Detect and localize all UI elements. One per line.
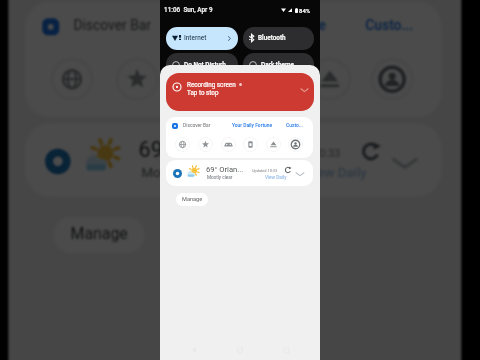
button[interactable]: Favourites (116, 58, 158, 100)
button[interactable]: Favourites (198, 137, 213, 152)
staticText: View Daily (306, 166, 368, 183)
button[interactable]: Refresh (360, 140, 382, 163)
button[interactable]: Custo... (365, 15, 413, 32)
button[interactable]: 69° Orlan... (166, 160, 313, 186)
button[interactable]: View Daily (306, 166, 368, 183)
button[interactable]: Expand weather (294, 168, 306, 180)
staticText: Tap to stop (187, 89, 219, 96)
staticText: Manage (71, 225, 130, 245)
button[interactable]: Expand weather (388, 146, 422, 180)
button[interactable]: Account (288, 137, 303, 152)
button[interactable]: Recording screen (166, 73, 314, 111)
button[interactable]: Refresh (284, 166, 292, 174)
staticText: 69° Orlan... (139, 137, 246, 163)
button[interactable]: Downloads (266, 137, 281, 152)
button[interactable]: Search (175, 137, 190, 152)
button[interactable]: Devices (243, 58, 286, 100)
button[interactable]: Account (371, 58, 413, 100)
staticText: Updated 10:33 (269, 146, 343, 160)
staticText: Internet (184, 34, 207, 42)
button[interactable]: Manage (54, 217, 144, 253)
button[interactable]: Devices (243, 137, 258, 152)
staticText: 69° Orlan... (206, 165, 244, 174)
staticText: Mostly clear (207, 175, 233, 181)
staticText: 84% (299, 7, 311, 14)
button[interactable]: View Daily (265, 175, 287, 181)
staticText: Manage (182, 196, 203, 203)
button[interactable]: 69° Orlan... (25, 123, 442, 197)
staticText: Dark theme (261, 61, 294, 69)
button[interactable]: Expand notification (298, 84, 310, 96)
staticText: Updated 10:33 (252, 168, 278, 173)
button[interactable]: Search (51, 58, 93, 100)
staticText: Recording screen (187, 81, 236, 88)
button[interactable]: Manage (176, 193, 208, 206)
staticText: View Daily (265, 175, 287, 181)
staticText: 11:06 Sun, Apr 9 (164, 6, 213, 14)
staticText: Your Daily Fortune (212, 15, 328, 32)
staticText: Do Not Disturb (184, 61, 226, 69)
staticText: Discover Bar (73, 15, 153, 32)
button[interactable]: Your Daily Fortune (232, 122, 273, 128)
staticText: Custo... (365, 15, 413, 32)
button[interactable]: Do Not Disturb (166, 53, 238, 76)
button[interactable]: Games (221, 137, 236, 152)
button[interactable]: Bluetooth (243, 27, 314, 50)
button[interactable]: Games (181, 58, 224, 100)
staticText: Custo... (286, 122, 303, 128)
button[interactable]: Discover Bar (183, 122, 211, 128)
staticText: Your Daily Fortune (232, 122, 273, 128)
staticText: Mostly clear (141, 166, 215, 183)
button[interactable]: Dark theme (243, 53, 314, 76)
button[interactable]: Downloads (309, 58, 351, 100)
button[interactable]: Discover Bar (73, 15, 153, 32)
staticText: Discover Bar (183, 122, 211, 128)
button[interactable]: Your Daily Fortune (212, 15, 328, 32)
button[interactable]: Custo... (286, 122, 303, 128)
staticText: Bluetooth (258, 34, 286, 42)
button[interactable]: Internet (166, 27, 238, 50)
